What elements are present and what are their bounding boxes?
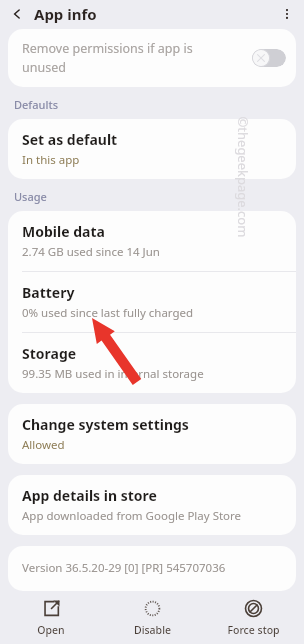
staticText: Remove permissions if app is (22, 40, 193, 57)
staticText: App info (34, 4, 97, 24)
staticText: Open (37, 623, 65, 637)
staticText: In this app (22, 152, 80, 168)
staticText: Change system settings (22, 415, 189, 434)
staticText: 2.74 GB used since 14 Jun (22, 244, 160, 260)
button[interactable]: Battery (8, 272, 296, 332)
staticText: 99.35 MB used in internal storage (22, 366, 204, 382)
button[interactable]: Mobile data (8, 211, 296, 271)
button[interactable]: Disable (102, 595, 203, 641)
button[interactable]: Remove permissions if app is unused (252, 49, 286, 67)
button[interactable]: Back (6, 3, 28, 25)
button[interactable]: App details in store (8, 475, 296, 535)
staticText: App downloaded from Google Play Store (22, 508, 242, 524)
button[interactable]: Force stop (203, 595, 304, 641)
staticText: Set as default (22, 130, 118, 149)
staticText: ©thegeekpage.com (233, 116, 251, 237)
staticText: Force stop (227, 623, 280, 637)
staticText: Allowed (22, 437, 65, 453)
button[interactable]: Open (0, 595, 102, 641)
staticText: Usage (14, 189, 47, 204)
staticText: Storage (22, 344, 77, 363)
staticText: Version 36.5.20-29 [0] [PR] 545707036 (22, 560, 226, 576)
button[interactable]: Remove permissions if app is (8, 29, 296, 87)
staticText: Disable (134, 623, 171, 637)
button[interactable]: Version 36.5.20-29 [0] [PR] 545707036 (8, 546, 296, 591)
staticText: 0% used since last fully charged (22, 305, 194, 321)
button[interactable]: Change system settings (8, 404, 296, 464)
button[interactable]: Storage (8, 333, 296, 393)
staticText: Defaults (14, 97, 58, 112)
button[interactable]: More options (275, 2, 299, 26)
staticText: Battery (22, 283, 75, 302)
staticText: Mobile data (22, 222, 105, 241)
staticText: unused (22, 59, 66, 76)
button[interactable]: Set as default (8, 119, 296, 179)
staticText: App details in store (22, 486, 157, 505)
